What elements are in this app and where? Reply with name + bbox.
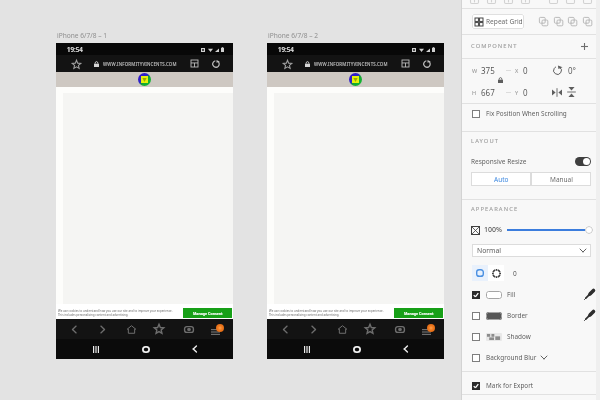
button[interactable]: Bookmark <box>281 58 293 70</box>
button[interactable]: Tabs <box>399 57 412 70</box>
staticText: We use cookies to understand how you use… <box>269 309 384 313</box>
button[interactable]: Pick Border colour <box>582 309 595 322</box>
button[interactable]: Bookmarks <box>149 319 169 339</box>
staticText: Manage Consent <box>193 311 223 316</box>
button[interactable]: Home <box>332 319 352 339</box>
staticText: W <box>472 67 478 74</box>
button[interactable]: Shadow preview <box>486 333 502 341</box>
button[interactable]: Reload <box>420 57 433 70</box>
staticText: 100% <box>484 225 502 235</box>
button[interactable]: Forward <box>92 319 112 339</box>
staticText: This includes personalizing content and … <box>58 313 129 317</box>
staticText: Fix Position When Scrolling <box>486 109 567 118</box>
staticText: iPhone 6/7/8 – 2 <box>268 31 318 40</box>
button[interactable]: Fix Position When Scrolling <box>462 105 600 122</box>
button[interactable]: Menu <box>418 319 438 339</box>
staticText: H <box>472 89 477 96</box>
staticText: Y <box>515 89 519 96</box>
staticText: WWW.INFORMITYVINCENTS.COM <box>103 61 177 67</box>
staticText: 19:54 <box>278 45 294 53</box>
button[interactable]: Bookmark <box>70 58 82 70</box>
button[interactable]: Responsive Resize toggle <box>575 157 591 166</box>
staticText: Shadow <box>507 332 531 341</box>
button[interactable]: Home <box>137 340 155 358</box>
button[interactable]: Tabs <box>188 57 201 70</box>
staticText: Repeat Grid <box>486 17 523 26</box>
button[interactable]: Back <box>397 340 415 358</box>
staticText: Background Blur <box>486 353 537 362</box>
button[interactable]: Tabs <box>390 319 410 339</box>
button[interactable]: Boolean operation 4 <box>580 14 594 28</box>
button[interactable]: Mark for Export <box>462 377 600 394</box>
button[interactable]: Menu <box>207 319 227 339</box>
button[interactable]: Back <box>64 319 84 339</box>
staticText: Responsive Resize <box>471 157 527 166</box>
staticText: 667 <box>481 87 495 98</box>
button[interactable]: Home <box>121 319 141 339</box>
staticText: Manage Consent <box>404 311 434 316</box>
staticText: Mark for Export <box>486 381 534 390</box>
button[interactable]: Back <box>275 319 295 339</box>
staticText: Auto <box>494 175 509 184</box>
button[interactable]: Auto <box>471 172 531 186</box>
button[interactable]: Repeat Grid <box>472 14 524 29</box>
button[interactable]: Fill enabled <box>469 288 482 301</box>
button[interactable]: Back <box>186 340 204 358</box>
staticText: iPhone 6/7/8 – 1 <box>57 31 107 40</box>
button[interactable]: Manual <box>531 172 591 186</box>
button[interactable]: Home <box>348 340 366 358</box>
button[interactable]: Shadow enabled <box>469 330 482 343</box>
staticText: LAYOUT <box>471 137 500 145</box>
button[interactable]: Individual corner radius <box>488 265 504 281</box>
button[interactable]: Boolean operation 2 <box>551 14 565 28</box>
button[interactable]: Boolean operation 3 <box>565 14 579 28</box>
staticText: Border <box>507 311 528 320</box>
button[interactable]: Border colour <box>486 312 502 320</box>
staticText: 0 <box>523 65 528 76</box>
staticText: Normal <box>477 246 502 255</box>
staticText: X <box>515 67 519 74</box>
button[interactable]: Manage Consent <box>183 308 232 318</box>
button[interactable]: Bookmarks <box>360 319 380 339</box>
staticText: 375 <box>481 65 495 76</box>
staticText: APPEARANCE <box>471 205 519 213</box>
button[interactable]: Forward <box>303 319 323 339</box>
button[interactable]: Background Blur <box>462 349 600 366</box>
staticText: We use cookies to understand how you use… <box>58 309 173 313</box>
staticText: Manual <box>550 175 573 184</box>
staticText: 0° <box>568 65 576 76</box>
staticText: 0 <box>513 269 517 278</box>
button[interactable]: Manage Consent <box>394 308 443 318</box>
button[interactable]: Border enabled <box>469 309 482 322</box>
button[interactable]: Normal <box>472 244 591 257</box>
staticText: 19:54 <box>67 45 83 53</box>
button[interactable]: Recents <box>87 340 105 358</box>
button[interactable]: Fill colour <box>486 291 502 299</box>
staticText: This includes personalizing content and … <box>269 313 340 317</box>
staticText: Fill <box>507 290 516 299</box>
staticText: COMPONENT <box>471 42 518 50</box>
staticText: 0 <box>523 87 528 98</box>
button[interactable]: Tabs <box>179 319 199 339</box>
button[interactable]: Boolean operation 1 <box>536 14 550 28</box>
staticText: WWW.INFORMITYVINCENTS.COM <box>314 61 388 67</box>
button[interactable]: Pick Fill colour <box>582 288 595 301</box>
button[interactable]: Uniform corner radius <box>472 265 488 281</box>
button[interactable]: Reload <box>209 57 222 70</box>
button[interactable]: Recents <box>298 340 316 358</box>
button[interactable]: Add component <box>577 39 591 53</box>
